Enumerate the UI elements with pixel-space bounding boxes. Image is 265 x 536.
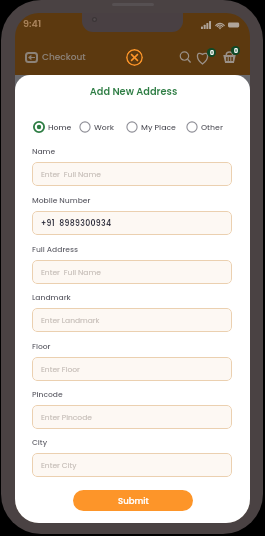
button[interactable]: Other — [186, 120, 223, 134]
staticText: Home — [48, 122, 72, 133]
button[interactable]: Home — [33, 120, 72, 134]
button[interactable]: Cart — [220, 45, 241, 66]
staticText: Full Address — [32, 244, 79, 255]
staticText: Enter Floor — [41, 364, 80, 374]
button[interactable]: Close — [126, 49, 143, 66]
staticText: Landmark — [32, 292, 71, 303]
staticText: Name — [32, 146, 56, 157]
button[interactable]: Enter Pincode — [32, 405, 232, 429]
button[interactable]: Enter Full Name — [32, 260, 232, 284]
staticText: Add New Address — [16, 85, 250, 99]
staticText: Enter Full Name — [41, 169, 101, 179]
staticText: Submit — [118, 495, 149, 507]
staticText: Checkout — [42, 51, 86, 64]
staticText: Enter Full Name — [41, 267, 101, 277]
button[interactable]: Wishlist — [196, 46, 217, 67]
staticText: Other — [201, 122, 223, 133]
staticText: City — [32, 437, 48, 448]
button[interactable]: +91 8989300934 — [32, 211, 232, 235]
button[interactable]: My Place — [126, 120, 176, 134]
staticText: Enter City — [41, 460, 77, 470]
staticText: Enter Landmark — [41, 315, 100, 325]
staticText: Enter Pincode — [41, 412, 92, 422]
button[interactable]: Submit — [73, 490, 193, 511]
button[interactable]: Enter Full Name — [32, 162, 232, 186]
staticText: 9:41 — [23, 17, 42, 30]
staticText: Pincode — [32, 389, 63, 400]
staticText: 0 — [210, 48, 214, 57]
staticText: My Place — [141, 122, 176, 133]
button[interactable]: Back — [25, 51, 86, 64]
button[interactable]: Enter City — [32, 453, 232, 477]
button[interactable]: Enter Landmark — [32, 308, 232, 332]
staticText: Floor — [32, 341, 51, 352]
button[interactable]: Search — [178, 49, 193, 64]
staticText: Work — [94, 122, 115, 133]
staticText: 0 — [234, 46, 238, 55]
staticText: Mobile Number — [32, 195, 91, 206]
button[interactable]: Work — [79, 120, 115, 134]
staticText: +91 8989300934 — [41, 218, 112, 229]
button[interactable]: Enter Floor — [32, 357, 232, 381]
